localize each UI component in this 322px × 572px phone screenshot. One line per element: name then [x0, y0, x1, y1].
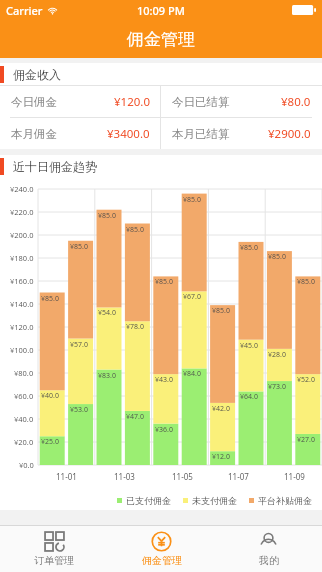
staticText: 近十日佣金趋势 — [13, 159, 97, 174]
staticText: ¥53.0 — [70, 405, 88, 415]
staticText: ¥40.0 — [14, 414, 34, 424]
staticText: ¥12.0 — [212, 452, 230, 462]
staticText: ¥52.0 — [297, 375, 315, 385]
staticText: 11-03 — [114, 471, 135, 482]
staticText: ¥64.0 — [240, 392, 258, 402]
staticText: ¥85.0 — [240, 243, 258, 253]
button[interactable]: 我的 — [215, 526, 322, 572]
staticText: 11-05 — [172, 471, 193, 482]
staticText: ¥57.0 — [70, 340, 88, 350]
staticText: ¥78.0 — [126, 322, 144, 332]
staticText: 平台补贴佣金 — [258, 495, 312, 506]
staticText: ¥120.0 — [114, 94, 150, 110]
staticText: 佣金收入 — [13, 67, 61, 82]
staticText: 佣金管理 — [142, 554, 182, 567]
staticText: 未支付佣金 — [192, 495, 237, 506]
staticText: ¥43.0 — [155, 375, 173, 385]
staticText: ¥28.0 — [268, 350, 286, 360]
staticText: ¥25.0 — [41, 437, 59, 447]
staticText: 我的 — [259, 554, 279, 567]
staticText: 11-01 — [56, 471, 77, 482]
staticText: ¥85.0 — [212, 306, 230, 316]
staticText: 订单管理 — [34, 554, 74, 567]
staticText: ¥220.0 — [10, 207, 34, 217]
staticText: ¥85.0 — [70, 242, 88, 252]
staticText: 今日已结算 — [172, 95, 230, 109]
staticText: Carrier — [6, 3, 43, 18]
staticText: ¥60.0 — [14, 391, 34, 401]
staticText: ¥80.0 — [14, 368, 34, 378]
staticText: ¥3400.0 — [107, 126, 150, 142]
staticText: ¥85.0 — [155, 277, 173, 287]
staticText: ¥140.0 — [10, 299, 34, 309]
staticText: ¥84.0 — [183, 369, 201, 379]
button[interactable]: 今日佣金 — [0, 86, 160, 117]
staticText: ¥20.0 — [14, 437, 34, 447]
staticText: 佣金管理 — [127, 29, 195, 50]
staticText: 今日佣金 — [11, 95, 57, 109]
button[interactable]: 订单管理 — [0, 526, 108, 572]
staticText: ¥85.0 — [268, 252, 286, 262]
button[interactable]: 佣金管理 — [108, 526, 215, 572]
staticText: 11-07 — [228, 471, 249, 482]
staticText: ¥42.0 — [212, 404, 230, 414]
staticText: ¥27.0 — [297, 435, 315, 445]
staticText: ¥100.0 — [10, 345, 34, 355]
staticText: 10:09 PM — [137, 3, 185, 18]
staticText: ¥2900.0 — [268, 126, 311, 142]
button[interactable]: 今日已结算 — [161, 86, 322, 117]
staticText: 11-09 — [284, 471, 305, 482]
staticText: 本月已结算 — [172, 127, 230, 141]
staticText: ¥85.0 — [41, 294, 59, 304]
staticText: ¥0.0 — [19, 460, 34, 470]
staticText: 已支付佣金 — [126, 495, 171, 506]
staticText: ¥67.0 — [183, 292, 201, 302]
staticText: ¥45.0 — [240, 341, 258, 351]
staticText: ¥240.0 — [10, 184, 34, 194]
staticText: ¥160.0 — [10, 276, 34, 286]
staticText: ¥200.0 — [10, 230, 34, 240]
staticText: ¥85.0 — [126, 225, 144, 235]
button[interactable]: 本月佣金 — [0, 118, 160, 149]
staticText: ¥180.0 — [10, 253, 34, 263]
staticText: ¥85.0 — [297, 277, 315, 287]
staticText: ¥120.0 — [10, 322, 34, 332]
staticText: ¥40.0 — [41, 391, 59, 401]
button[interactable]: 本月已结算 — [161, 118, 322, 149]
staticText: ¥47.0 — [126, 412, 144, 422]
staticText: ¥54.0 — [98, 308, 116, 318]
staticText: ¥36.0 — [155, 425, 173, 435]
staticText: ¥85.0 — [98, 211, 116, 221]
staticText: ¥73.0 — [268, 382, 286, 392]
staticText: ¥80.0 — [281, 94, 311, 110]
staticText: ¥85.0 — [183, 195, 201, 205]
staticText: 本月佣金 — [11, 127, 57, 141]
staticText: ¥83.0 — [98, 371, 116, 381]
